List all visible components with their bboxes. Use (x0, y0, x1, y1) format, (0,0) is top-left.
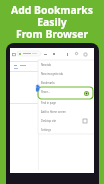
staticText: Desktop site (41, 119, 57, 123)
button[interactable]: Home (12, 52, 16, 56)
staticText: Bookmarks (41, 81, 55, 85)
staticText: Find in page (41, 101, 56, 105)
button[interactable]: Desktop site (38, 117, 94, 125)
button[interactable]: Settings (38, 126, 94, 134)
staticText: Settings (41, 128, 51, 132)
staticText: Share... (41, 90, 51, 94)
staticText: New incognito tab (41, 72, 64, 76)
button[interactable]: New incognito tab (38, 70, 94, 78)
staticText: Add to Home screen (41, 110, 66, 114)
button[interactable]: Share... (38, 88, 94, 96)
button[interactable]: Find in page (38, 99, 94, 107)
staticText: New tab (41, 63, 52, 67)
button[interactable]: Add to Home screen (38, 108, 94, 116)
button[interactable]: New tab (38, 61, 94, 69)
staticText: Add Bookmarks Easily From Browser (0, 3, 104, 41)
button[interactable]: Bookmarks (38, 79, 94, 87)
